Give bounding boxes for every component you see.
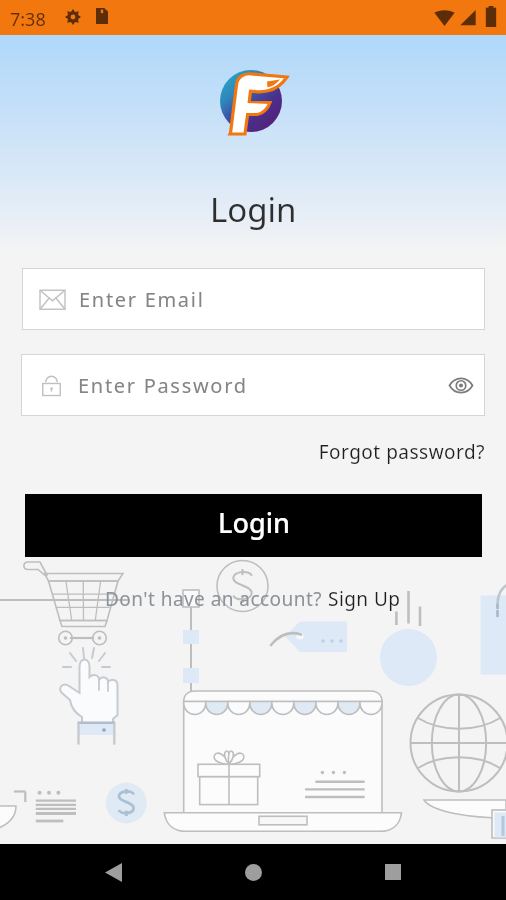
staticText: Login [210,187,297,232]
button[interactable]: Enter Password [21,354,485,416]
staticText: Don't have an account? [105,586,328,612]
button[interactable]: Back [86,845,140,899]
button[interactable]: Show password [444,368,478,402]
button[interactable]: Forgot password? [0,439,485,465]
staticText: 7:38 [10,7,46,32]
button[interactable]: Home [226,845,280,899]
staticText: Enter Password [78,372,248,399]
button[interactable]: Recent apps [366,845,420,899]
button[interactable]: Enter Email [22,268,485,330]
staticText: Login [218,504,290,541]
button[interactable]: Sign Up [328,586,401,612]
staticText: Enter Email [79,286,205,313]
button[interactable]: Login [25,494,482,557]
